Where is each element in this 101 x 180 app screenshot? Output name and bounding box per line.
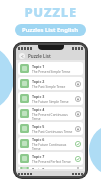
button[interactable]: Topic 2 xyxy=(18,77,83,90)
button[interactable]: Topic 1 xyxy=(18,62,83,75)
button[interactable]: Topic 4 xyxy=(18,107,83,120)
staticText: Topic 3 xyxy=(32,94,45,99)
other: Locked xyxy=(75,81,81,87)
button[interactable]: Puzzles List English xyxy=(15,24,86,36)
other: Locked xyxy=(75,167,81,169)
button[interactable]: Topic 8 xyxy=(18,167,83,169)
staticText: The Past Continuous Tense xyxy=(32,130,73,134)
staticText: PUZZLE xyxy=(24,3,77,21)
button[interactable]: Topic 7 xyxy=(18,152,83,165)
staticText: The Future Simple Tense xyxy=(32,100,69,104)
staticText: The Present Continuous Tense xyxy=(32,113,75,120)
button[interactable]: Topic 6 xyxy=(18,137,83,150)
other: Locked xyxy=(75,96,81,102)
staticText: The Present Simple Tense xyxy=(32,70,71,74)
staticText: Topic 8 xyxy=(32,167,45,169)
other: Completed xyxy=(75,156,81,162)
staticText: Topic 2 xyxy=(32,79,45,84)
staticText: The Past Simple Tense xyxy=(32,85,66,89)
staticText: Puzzles List English xyxy=(22,26,79,34)
other: Completed xyxy=(75,141,81,147)
staticText: Topic 1 xyxy=(32,64,45,69)
staticText: The Present Perfect Tense xyxy=(32,160,71,164)
other: Locked xyxy=(75,111,81,117)
button[interactable]: Back xyxy=(19,53,25,59)
staticText: Topic 7 xyxy=(32,154,45,159)
button[interactable]: Topic 5 xyxy=(18,122,83,135)
staticText: Topic 6 xyxy=(32,137,45,142)
staticText: Topic 5 xyxy=(32,124,45,129)
button[interactable]: Topic 3 xyxy=(18,92,83,105)
other: Locked xyxy=(75,126,81,132)
staticText: The Future Continuous Tense xyxy=(32,143,75,150)
staticText: Topic 4 xyxy=(32,107,45,112)
staticText: Puzzle List xyxy=(28,53,51,59)
